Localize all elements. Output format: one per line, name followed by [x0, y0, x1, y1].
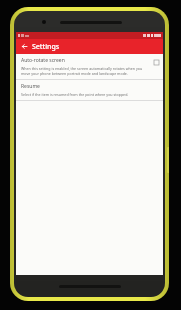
staticText: Settings — [32, 42, 60, 52]
staticText: Resume — [21, 83, 40, 90]
button[interactable]: Auto-rotate screen — [16, 54, 163, 79]
button[interactable]: Auto-rotate screen toggle — [152, 58, 160, 66]
staticText: Select if the item is resumed from the p… — [21, 92, 129, 97]
button[interactable]: Resume — [16, 80, 163, 100]
staticText: When this setting is enabled, the screen… — [21, 66, 149, 76]
button[interactable]: Back — [16, 39, 32, 54]
staticText: Auto-rotate screen — [21, 57, 65, 64]
